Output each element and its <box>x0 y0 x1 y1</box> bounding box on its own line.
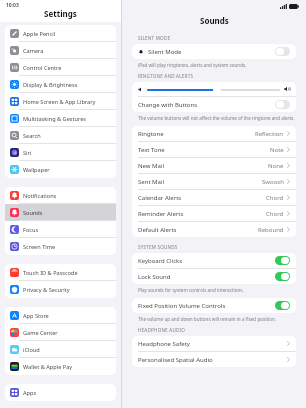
staticText: Apps <box>23 389 37 397</box>
staticText: Settings <box>44 8 77 19</box>
button[interactable]: Display & Brightness <box>5 76 116 93</box>
staticText: Silent Mode <box>148 48 182 56</box>
button[interactable]: Off <box>275 47 290 56</box>
button[interactable]: Default Alerts <box>132 222 296 237</box>
button[interactable]: Apple Pencil <box>5 25 116 42</box>
staticText: Privacy & Security <box>23 286 70 294</box>
staticText: None <box>268 162 284 170</box>
staticText: Sounds <box>200 15 229 26</box>
staticText: Chord <box>266 194 284 202</box>
staticText: RINGTONE AND ALERTS <box>138 73 194 79</box>
staticText: New Mail <box>138 162 165 170</box>
button[interactable]: Control Centre <box>5 59 116 76</box>
staticText: Default Alerts <box>138 226 177 234</box>
button[interactable]: Change with Buttons <box>132 97 296 112</box>
staticText: Play sounds for system controls and inte… <box>138 287 244 293</box>
button[interactable]: Camera <box>5 42 116 59</box>
staticText: Camera <box>23 47 44 55</box>
staticText: Screen Time <box>23 243 56 251</box>
staticText: Note <box>270 146 284 154</box>
staticText: Text Tone <box>138 146 165 154</box>
staticText: Notifications <box>23 192 57 200</box>
button[interactable]: Calendar Alerts <box>132 190 296 206</box>
staticText: Reflection <box>255 130 284 138</box>
staticText: Display & Brightness <box>23 81 78 89</box>
staticText: SYSTEM SOUNDS <box>138 244 178 250</box>
staticText: Keyboard Clicks <box>138 257 183 265</box>
staticText: Ringtone <box>138 130 164 138</box>
staticText: Game Center <box>23 329 58 337</box>
button[interactable]: Home Screen & App Library <box>5 93 116 110</box>
button[interactable]: iCloud <box>5 341 116 358</box>
button[interactable]: Game Center <box>5 324 116 341</box>
button[interactable]: On <box>275 272 290 281</box>
button[interactable]: Text Tone <box>132 142 296 158</box>
staticText: Multitasking & Gestures <box>23 115 87 123</box>
button[interactable]: Silent Mode <box>132 44 296 59</box>
button[interactable]: New Mail <box>132 158 296 174</box>
button[interactable]: Sounds <box>5 204 116 221</box>
button[interactable]: Search <box>5 127 116 144</box>
other: Volume low <box>138 87 143 92</box>
staticText: SILENT MODE <box>138 35 171 41</box>
button[interactable]: Off <box>275 100 290 109</box>
staticText: App Store <box>23 312 49 320</box>
staticText: Search <box>23 132 41 140</box>
button[interactable]: Sent Mail <box>132 174 296 190</box>
button[interactable]: Siri <box>5 144 116 161</box>
staticText: Wallet & Apple Pay <box>23 363 73 371</box>
button[interactable]: Keyboard Clicks <box>132 253 296 269</box>
staticText: Personalised Spatial Audio <box>138 356 213 364</box>
button[interactable]: On <box>275 301 290 310</box>
button[interactable]: Ringtone <box>132 126 296 142</box>
button[interactable]: App Store <box>5 307 116 324</box>
staticText: Swoosh <box>262 178 284 186</box>
button[interactable]: Fixed Position Volume Controls <box>132 298 296 313</box>
button[interactable]: Notifications <box>5 187 116 204</box>
button[interactable]: Multitasking & Gestures <box>5 110 116 127</box>
button[interactable]: Lock Sound <box>132 269 296 284</box>
staticText: Siri <box>23 149 32 157</box>
button[interactable]: Personalised Spatial Audio <box>132 352 296 367</box>
staticText: Calendar Alerts <box>138 194 182 202</box>
staticText: Apple Pencil <box>23 30 56 38</box>
button[interactable]: On <box>275 256 290 265</box>
staticText: Lock Sound <box>138 273 171 281</box>
staticText: iCloud <box>23 346 40 354</box>
button[interactable]: Reminder Alerts <box>132 206 296 222</box>
button[interactable]: Touch ID & Passcode <box>5 264 116 281</box>
staticText: Reminder Alerts <box>138 210 184 218</box>
staticText: Headphone Safety <box>138 340 190 348</box>
staticText: 10:03 <box>6 2 19 9</box>
button[interactable]: Focus <box>5 221 116 238</box>
staticText: Touch ID & Passcode <box>23 269 78 277</box>
staticText: Sent Mail <box>138 178 165 186</box>
staticText: Fixed Position Volume Controls <box>138 302 226 310</box>
staticText: The volume up and down buttons will rema… <box>138 316 277 322</box>
staticText: iPad will play ringtones, alerts and sys… <box>138 62 247 68</box>
button[interactable]: Privacy & Security <box>5 281 116 298</box>
button[interactable]: Screen Time <box>5 238 116 255</box>
staticText: Chord <box>266 210 284 218</box>
staticText: Sounds <box>23 209 43 217</box>
staticText: Wallpaper <box>23 166 50 174</box>
staticText: HEADPHONE AUDIO <box>138 327 186 333</box>
button[interactable]: Wallpaper <box>5 161 116 178</box>
other: Volume high <box>284 86 290 92</box>
staticText: Control Centre <box>23 64 62 72</box>
staticText: The volume buttons will not affect the v… <box>138 115 295 121</box>
staticText: Focus <box>23 226 39 234</box>
button[interactable]: Wallet & Apple Pay <box>5 358 116 375</box>
staticText: Home Screen & App Library <box>23 98 96 106</box>
staticText: Rebound <box>258 226 284 234</box>
button[interactable]: Headphone Safety <box>132 336 296 352</box>
staticText: Change with Buttons <box>138 101 198 109</box>
button[interactable]: Apps <box>5 384 116 401</box>
